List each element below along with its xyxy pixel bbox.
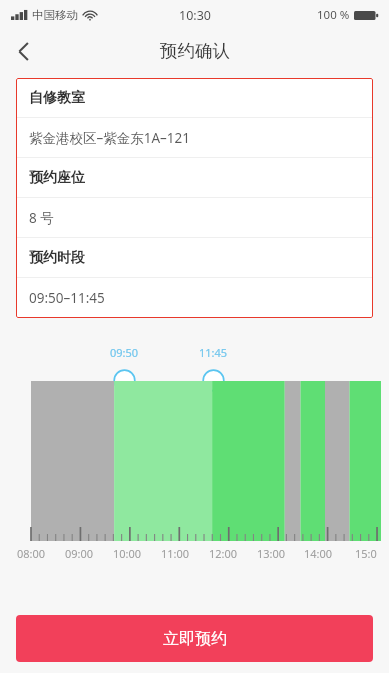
button[interactable]: 紫金港校区–紫金东1A–121 [16,118,373,158]
staticText: 10:00 [113,546,142,561]
staticText: 自修教室 [29,89,85,107]
staticText: 13:00 [257,546,286,561]
staticText: 15:0 [355,546,377,561]
staticText: 立即预约 [163,629,227,649]
staticText: 中国移动 [32,8,78,22]
button[interactable]: 09:50–11:45 [16,278,373,318]
staticText: 预约座位 [29,169,85,187]
staticText: 10:30 [179,7,211,24]
button[interactable]: Time handle [202,369,225,392]
button[interactable]: 预约时段 [16,238,373,278]
staticText: 09:50–11:45 [29,289,105,307]
button[interactable]: 立即预约 [16,615,373,662]
staticText: 紫金港校区–紫金东1A–121 [29,129,191,147]
staticText: 预约时段 [29,249,85,267]
staticText: 12:00 [209,546,238,561]
staticText: 09:50 [110,345,139,360]
staticText: 09:00 [65,546,94,561]
button[interactable]: 8 号 [16,198,373,238]
button[interactable]: 预约座位 [16,158,373,198]
staticText: 100 % [317,7,350,23]
staticText: 11:00 [161,546,190,561]
staticText: 8 号 [29,209,54,227]
staticText: 14:00 [304,546,333,561]
button[interactable]: 自修教室 [16,78,373,118]
button[interactable]: Back [0,30,46,72]
button[interactable]: Availability timeline [0,381,389,541]
button[interactable]: Time handle [113,369,136,392]
staticText: 11:45 [199,345,228,360]
staticText: 预约确认 [160,40,230,62]
staticText: 08:00 [17,546,46,561]
